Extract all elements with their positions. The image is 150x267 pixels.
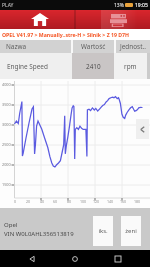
button[interactable]: Print (101, 10, 137, 29)
button[interactable]: Recents (107, 250, 129, 267)
staticText: 120 (93, 199, 100, 204)
button[interactable]: Jednost.. (116, 40, 150, 53)
staticText: 13% (114, 2, 124, 9)
button[interactable]: Engine Speed (0, 53, 72, 79)
staticText: 60 (53, 199, 58, 204)
staticText: Engine Speed (7, 62, 48, 71)
staticText: 180 (134, 199, 141, 204)
staticText: żeni (125, 227, 137, 235)
staticText: OPEL V41.97 > Manually..stre-H > Silnik … (2, 31, 130, 38)
button[interactable]: Wartość (73, 40, 114, 53)
staticText: PLAY (2, 2, 14, 9)
button[interactable]: Home (64, 250, 86, 267)
staticText: Opel (4, 221, 18, 229)
staticText: 3000 (2, 122, 11, 127)
staticText: 40 (40, 199, 45, 204)
staticText: 2000 (2, 162, 11, 167)
staticText: Wartość (81, 42, 106, 51)
staticText: 20 (26, 199, 31, 204)
staticText: Jednost.. (120, 42, 146, 51)
staticText: VIN W0L0AHL356513819 (4, 230, 74, 238)
staticText: 80 (67, 199, 72, 204)
staticText: 2500 (2, 142, 11, 147)
button[interactable]: Home (23, 10, 57, 29)
staticText: 0 (14, 199, 17, 204)
button[interactable]: Previous (136, 119, 149, 139)
staticText: iks. (98, 227, 108, 235)
staticText: 160 (120, 199, 127, 204)
staticText: 1500 (2, 182, 11, 187)
staticText: 140 (107, 199, 114, 204)
staticText: 4000 (2, 82, 11, 87)
staticText: 19:05 (135, 2, 148, 9)
staticText: 3500 (2, 102, 11, 107)
staticText: 2410 (86, 62, 101, 71)
staticText: 100 (80, 199, 87, 204)
button[interactable]: Nazwa (0, 40, 71, 53)
button[interactable]: Back (21, 250, 43, 267)
staticText: Nazwa (6, 42, 27, 51)
button[interactable]: żeni (121, 216, 141, 246)
staticText: rpm (124, 62, 137, 71)
button[interactable]: iks. (93, 216, 113, 246)
